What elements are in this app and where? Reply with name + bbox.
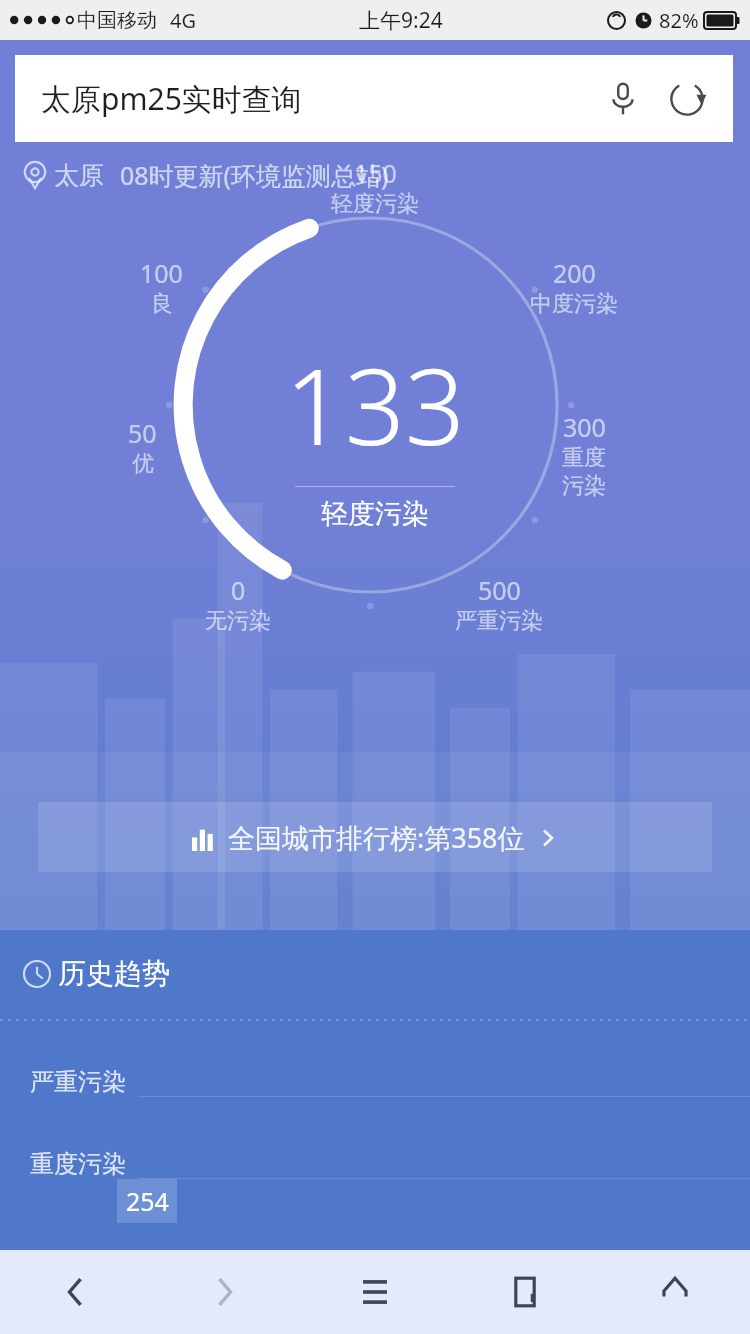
staticText: 污染 [562, 472, 606, 500]
staticText: 100 [140, 256, 183, 290]
staticText: 全国城市排行榜:第358位 [228, 819, 525, 856]
staticText: 优 [132, 450, 154, 478]
button[interactable]: 太原pm25实时查询 [15, 55, 733, 142]
staticText: 历史趋势 [58, 956, 170, 991]
staticText: 上午9:24 [359, 6, 443, 35]
staticText: 重度污染 [30, 1149, 126, 1179]
staticText: 良 [151, 290, 173, 318]
staticText: 133 [285, 333, 465, 476]
button[interactable]: 全国城市排行榜:第358位 [38, 802, 712, 872]
button[interactable]: Home [600, 1250, 750, 1334]
staticText: 严重污染 [455, 607, 543, 635]
staticText: 无污染 [205, 607, 271, 635]
button[interactable]: Voice search [595, 71, 651, 127]
staticText: 轻度污染 [321, 497, 429, 531]
button[interactable]: Menu [300, 1250, 450, 1334]
button[interactable]: 历史趋势 [22, 956, 170, 991]
button[interactable]: Refresh [659, 71, 715, 127]
staticText: 中国移动 [77, 8, 157, 33]
staticText: 轻度污染 [331, 190, 419, 218]
staticText: 50 [128, 416, 157, 450]
button[interactable]: Tabs [450, 1250, 600, 1334]
staticText: 300 [563, 410, 606, 444]
staticText: 0 [231, 573, 246, 607]
staticText: 254 [126, 1184, 169, 1218]
staticText: 500 [478, 573, 521, 607]
staticText: 太原pm25实时查询 [41, 78, 302, 119]
staticText: 82% [659, 7, 699, 34]
staticText: 200 [553, 256, 596, 290]
staticText: 中度污染 [530, 290, 618, 318]
staticText: 太原 [54, 160, 104, 191]
staticText: 严重污染 [30, 1067, 126, 1097]
button[interactable]: 太原 [20, 158, 750, 192]
staticText: 08时更新(环境监测总站) [120, 158, 389, 192]
staticText: 4G [170, 7, 196, 34]
staticText: 150 [354, 156, 397, 190]
button[interactable]: Back [0, 1250, 150, 1334]
button[interactable]: Forward [150, 1250, 300, 1334]
staticText: 重度 [562, 444, 606, 472]
